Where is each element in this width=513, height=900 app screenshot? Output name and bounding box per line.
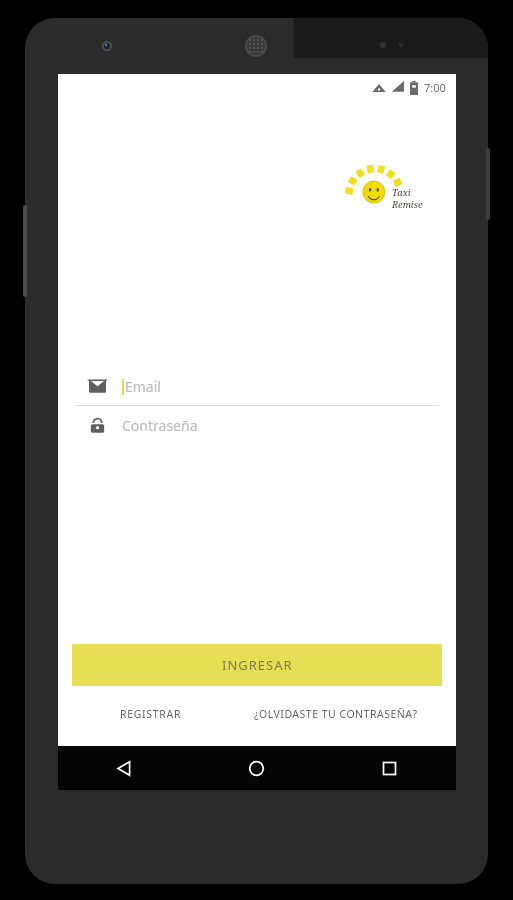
staticText: 7:00 — [424, 80, 446, 95]
button[interactable]: Recent apps — [323, 746, 456, 790]
button[interactable]: ¿OLVIDASTE TU CONTRASEÑA? — [229, 700, 442, 728]
staticText: ¿OLVIDASTE TU CONTRASEÑA? — [254, 707, 418, 721]
staticText: Email — [125, 377, 161, 396]
button[interactable]: Home — [190, 746, 323, 790]
staticText: Taxi Remise — [392, 186, 442, 208]
button[interactable]: Password — [75, 406, 439, 444]
staticText: REGISTRAR — [120, 707, 182, 721]
button[interactable]: Back — [58, 746, 190, 790]
button[interactable]: REGISTRAR — [72, 700, 229, 728]
staticText: INGRESAR — [222, 656, 293, 674]
staticText: Contraseña — [122, 416, 198, 435]
button[interactable]: Email — [75, 367, 439, 405]
other: Email — [89, 378, 106, 395]
button[interactable]: INGRESAR — [72, 644, 442, 686]
other: Password — [89, 417, 106, 434]
